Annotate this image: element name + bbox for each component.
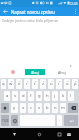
staticText: Napsat novou zprávu (11, 9, 55, 15)
button[interactable]: c (28, 103, 34, 113)
button[interactable]: g (36, 91, 42, 101)
staticText: 6 (43, 79, 45, 82)
staticText: 4 (27, 79, 29, 82)
button[interactable]: u (48, 79, 54, 89)
button[interactable]: Enter (64, 115, 78, 126)
button[interactable]: Home (34, 129, 44, 139)
button[interactable]: k (60, 91, 66, 101)
button[interactable]: Emoji suggestion (0, 69, 25, 75)
button[interactable]: z (40, 79, 46, 89)
button[interactable]: j (52, 91, 58, 101)
staticText: v (38, 105, 41, 111)
staticText: h (46, 93, 49, 99)
staticText: g (38, 93, 41, 99)
button[interactable]: a (4, 91, 10, 101)
staticText: j (54, 93, 56, 99)
button[interactable]: v (36, 103, 42, 113)
button[interactable]: Ahoj (25, 69, 45, 75)
staticText: t (34, 81, 36, 87)
staticText: r (26, 81, 28, 87)
button[interactable]: d (20, 91, 26, 101)
button[interactable]: w (8, 79, 14, 89)
staticText: a (6, 93, 9, 99)
staticText: m (61, 105, 65, 111)
button[interactable]: e (16, 79, 22, 89)
staticText: 1 (3, 79, 5, 82)
staticText: s (14, 93, 17, 99)
staticText: 5 (35, 79, 37, 82)
staticText: 2 (11, 79, 13, 82)
staticText: k (62, 93, 65, 99)
staticText: o (66, 81, 69, 87)
staticText: u (50, 81, 53, 87)
staticText: Ahoj (31, 70, 39, 75)
button[interactable]: More options (71, 7, 79, 16)
staticText: z (42, 81, 44, 87)
staticText: l (70, 93, 72, 99)
button[interactable]: Emoji (11, 115, 18, 126)
staticText: x (22, 105, 25, 111)
button[interactable]: x (20, 103, 26, 113)
button[interactable]: n (52, 103, 58, 113)
staticText: 0 (75, 79, 77, 82)
button[interactable]: q (1, 79, 6, 89)
button[interactable]: r (24, 79, 30, 89)
staticText: 8 (59, 79, 61, 82)
button[interactable]: i (56, 79, 62, 89)
button[interactable]: b (44, 103, 50, 113)
button[interactable]: o (64, 79, 70, 89)
button[interactable]: m (60, 103, 66, 113)
button[interactable]: y (11, 103, 18, 113)
staticText: q (2, 81, 5, 87)
staticText: 12:45 (69, 1, 78, 6)
staticText: Ahoj (58, 70, 66, 75)
button[interactable]: Shift (1, 103, 9, 113)
staticText: w (9, 81, 13, 87)
staticText: 7 (51, 79, 53, 82)
staticText: p (74, 81, 77, 87)
staticText: Zadejte jméno nebo číslo příjemce (2, 18, 59, 23)
button[interactable]: h (44, 91, 50, 101)
button[interactable]: l (68, 91, 74, 101)
button[interactable]: p (72, 79, 78, 89)
button[interactable]: ?123 (1, 115, 9, 126)
staticText: d (22, 93, 25, 99)
staticText: n (54, 105, 57, 111)
staticText: ?123 (2, 119, 9, 123)
staticText: 9 (67, 79, 69, 82)
staticText: . (59, 117, 61, 123)
button[interactable]: . (57, 115, 62, 126)
staticText: e (18, 81, 21, 87)
staticText: i (58, 81, 60, 87)
staticText: c (30, 105, 33, 111)
button[interactable]: Backspace (68, 103, 78, 113)
button[interactable]: f (28, 91, 34, 101)
staticText: y (13, 105, 16, 111)
button[interactable]: s (12, 91, 18, 101)
button[interactable]: Recent apps (54, 129, 64, 139)
button[interactable]: Ahoj (45, 69, 79, 75)
staticText: f (30, 93, 32, 99)
button[interactable]: Back (0, 7, 11, 16)
button[interactable]: Hide keyboard (9, 129, 19, 139)
button[interactable]: More suggestions (69, 64, 73, 68)
button[interactable]: t (32, 79, 38, 89)
staticText: 3 (19, 79, 21, 82)
staticText: b (46, 105, 49, 111)
button[interactable]: Switch keyboard (65, 130, 73, 138)
